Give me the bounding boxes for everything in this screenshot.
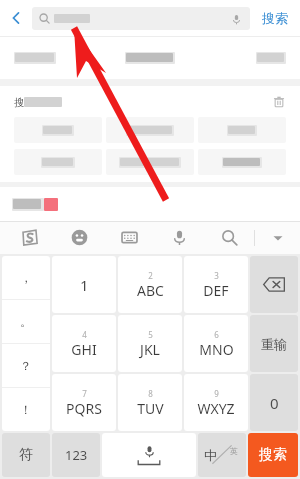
button[interactable]: Voice search [229,12,243,26]
staticText: 8 [148,388,153,399]
staticText: PQRS [66,399,102,418]
staticText: MNO [199,340,234,359]
staticText: 搜索 [259,446,287,464]
button[interactable]: Voice input [154,221,204,254]
button[interactable]: 搜索 [248,433,298,477]
button[interactable] [106,149,194,175]
staticText: GHI [71,340,97,359]
button[interactable]: 3 [184,256,248,313]
button[interactable]: 8 [118,374,182,431]
staticText: 中 [204,447,217,463]
staticText: 123 [65,446,88,464]
staticText: WXYZ [197,399,235,418]
staticText: 4 [82,329,87,340]
staticText: DEF [203,281,229,300]
staticText: ？ [20,358,32,373]
button[interactable]: Clear history [270,93,288,111]
button[interactable]: 2 [118,256,182,313]
staticText: 。 [20,314,32,329]
button[interactable]: Backspace [250,256,298,313]
button[interactable]: 6 [184,315,248,372]
button[interactable]: Voice search [32,7,250,30]
button[interactable] [14,149,102,175]
button[interactable]: 0 [250,374,298,431]
button[interactable]: ， [2,256,50,299]
button[interactable] [14,117,102,143]
button[interactable]: 123 [52,433,100,477]
button[interactable] [0,187,300,221]
staticText: 0 [270,393,279,413]
button[interactable] [0,37,300,79]
staticText: ， [20,270,32,285]
button[interactable]: 重输 [250,315,298,372]
button[interactable]: Space, voice input [102,433,196,477]
staticText: ABC [137,281,164,300]
button[interactable]: ？ [2,344,50,387]
button[interactable]: 9 [184,374,248,431]
staticText: 6 [214,329,219,340]
button[interactable]: Keyboard layout [104,221,154,254]
staticText: 搜 [14,96,24,109]
button[interactable]: Sogou input settings [4,221,54,254]
staticText: 符 [19,446,33,464]
button[interactable]: 搜索 [250,0,300,36]
staticText: 3 [214,270,219,281]
staticText: 英 [230,446,238,456]
button[interactable]: 7 [52,374,116,431]
button[interactable]: Search [204,221,254,254]
button[interactable]: 4 [52,315,116,372]
button[interactable]: 5 [118,315,182,372]
button[interactable]: 1 [52,256,116,313]
other: Space, voice input [102,433,196,477]
staticText: 1 [80,275,89,295]
button[interactable]: ！ [2,388,50,431]
button[interactable]: Back [0,0,32,36]
button[interactable] [198,117,286,143]
staticText: 5 [148,329,153,340]
staticText: 搜索 [262,10,288,26]
other: Backspace [250,256,298,313]
staticText: 2 [148,270,153,281]
button[interactable]: 中 [198,433,246,477]
button[interactable]: 。 [2,300,50,343]
staticText: 7 [82,388,87,399]
button[interactable] [106,117,194,143]
staticText: JKL [140,340,160,359]
button[interactable] [198,149,286,175]
button[interactable]: More [255,221,300,254]
button[interactable]: 符 [2,433,50,477]
staticText: 重输 [261,336,287,352]
staticText: ！ [20,402,32,417]
button[interactable]: Emoji [54,221,104,254]
staticText: TUV [137,399,164,418]
staticText: 9 [214,388,219,399]
